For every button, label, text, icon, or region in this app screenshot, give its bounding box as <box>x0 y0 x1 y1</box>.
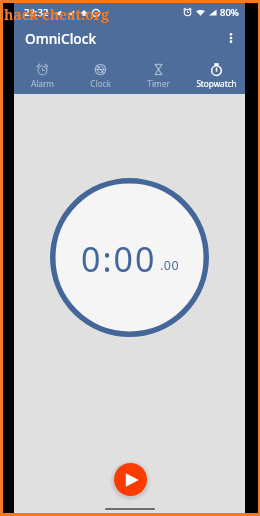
staticText: Timer <box>147 78 170 89</box>
button[interactable]: More options <box>217 24 245 52</box>
button[interactable]: Timer <box>129 54 187 89</box>
staticText: Clock <box>90 78 111 89</box>
staticText: Stopwatch <box>196 78 237 89</box>
button[interactable]: Alarm <box>14 54 71 89</box>
staticText: 22:32 <box>24 6 49 19</box>
button[interactable]: Start <box>114 463 147 496</box>
button[interactable]: Clock <box>71 54 129 89</box>
staticText: 0:00 <box>81 236 157 282</box>
staticText: .00 <box>160 257 180 274</box>
staticText: hack-cheat.org <box>4 5 110 24</box>
staticText: Alarm <box>31 78 54 89</box>
button[interactable]: Stopwatch <box>187 54 245 89</box>
staticText: OmniClock <box>25 29 97 48</box>
staticText: 80% <box>220 6 239 19</box>
